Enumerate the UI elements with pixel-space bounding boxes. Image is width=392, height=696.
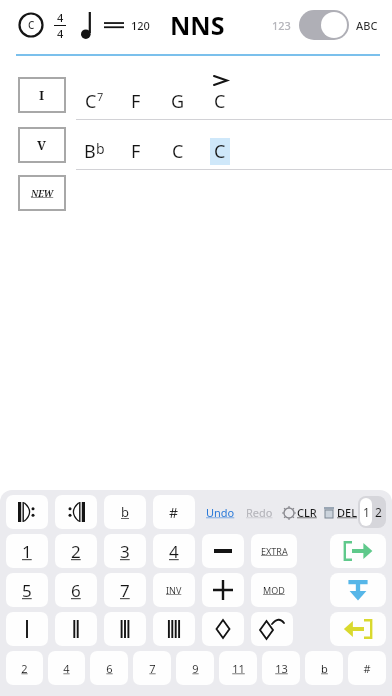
button[interactable]: b [305,651,343,685]
button[interactable]: 6 [90,651,128,685]
button[interactable]: G [162,75,194,115]
staticText: F [131,139,141,164]
button[interactable]: 9 [176,651,214,685]
button[interactable]: 11 [219,651,257,685]
button[interactable]: 120 [131,18,150,33]
staticText: 123 [272,18,291,33]
button[interactable]: Minus [202,534,244,568]
staticText: 6 [71,579,81,602]
staticText: 13 [275,661,288,676]
button[interactable]: B [78,125,110,165]
button[interactable]: Undo [205,499,236,526]
button[interactable]: MOD [251,573,297,607]
button[interactable]: 2 [55,534,97,568]
staticText: 4 [63,661,70,676]
button[interactable]: NNS [170,8,225,42]
staticText: C [28,18,35,32]
staticText: G [171,89,185,114]
button[interactable]: DEL [323,499,358,526]
staticText: MOD [263,584,285,596]
button[interactable]: Time signature symbol [18,12,44,38]
staticText: 4 [57,10,64,25]
button[interactable]: Repeat end [55,495,97,529]
button[interactable]: NEW [18,175,66,211]
button[interactable]: V [18,127,66,163]
button[interactable]: Toggle numeric and letter notation [299,10,349,40]
button[interactable]: 1 [6,534,48,568]
button[interactable]: F [120,75,152,115]
button[interactable]: Insert [330,573,386,607]
staticText: 1 [22,540,32,563]
staticText: b [96,139,105,158]
button[interactable]: Quarter note [80,10,96,40]
button[interactable]: Redo [245,499,274,526]
button[interactable]: INV [153,573,195,607]
button[interactable]: Return [330,612,386,646]
button[interactable]: b [104,495,146,529]
button[interactable]: 4 [52,10,68,41]
button[interactable]: 5 [6,573,48,607]
button[interactable]: # [153,495,195,529]
staticText: CLR [297,505,317,520]
button[interactable]: Plus [202,573,244,607]
button[interactable]: F [120,125,152,165]
staticText: 11 [232,661,245,676]
staticText: V [37,136,47,154]
button[interactable]: Diamond tie [251,612,293,646]
button[interactable]: 4 [48,651,85,685]
staticText: 7 [97,89,104,104]
staticText: 1 [363,504,370,520]
staticText: Redo [246,505,273,520]
button[interactable]: 3 [104,534,146,568]
staticText: NEW [31,187,54,199]
staticText: 7 [149,661,156,676]
staticText: 2 [21,661,28,676]
button[interactable]: EXTRA [251,534,297,568]
staticText: Undo [206,505,235,520]
staticText: b [121,503,129,521]
staticText: DEL [337,505,358,520]
staticText: 9 [192,661,199,676]
staticText: 2 [71,540,81,563]
button[interactable]: C [204,125,236,165]
button[interactable]: I [18,77,66,113]
button[interactable]: 13 [262,651,300,685]
staticText: 4 [57,26,64,41]
button[interactable]: 2 [6,651,43,685]
staticText: 5 [22,579,32,602]
staticText: I [39,86,45,104]
button[interactable]: One beat [6,612,48,646]
staticText: INV [166,584,182,596]
button[interactable]: # [348,651,386,685]
button[interactable]: Three beats [104,612,146,646]
button[interactable]: Four beats [153,612,195,646]
button[interactable]: CLR [283,499,317,526]
staticText: C [172,139,184,164]
button[interactable]: 7 [133,651,171,685]
button[interactable]: 2 [372,498,384,526]
staticText: C [214,139,226,164]
button[interactable]: 1 [360,498,372,526]
button[interactable]: Two beats [55,612,97,646]
staticText: EXTRA [261,545,288,557]
staticText: C [85,89,97,114]
button[interactable]: 6 [55,573,97,607]
staticText: B [84,139,96,164]
staticText: 3 [120,540,130,563]
button[interactable]: Repeat start [6,495,48,529]
button[interactable]: C [204,75,236,115]
button[interactable]: Diamond [202,612,244,646]
staticText: # [363,661,371,676]
button[interactable]: 4 [153,534,195,568]
staticText: b [321,661,328,676]
staticText: # [169,503,179,522]
staticText: ABC [356,18,378,33]
button[interactable]: C [162,125,194,165]
button[interactable]: Next section [330,534,386,568]
button[interactable]: C [78,75,110,115]
staticText: 2 [375,504,382,520]
staticText: 7 [120,579,130,602]
staticText: C [214,89,226,114]
staticText: 4 [169,540,179,563]
button[interactable]: 7 [104,573,146,607]
